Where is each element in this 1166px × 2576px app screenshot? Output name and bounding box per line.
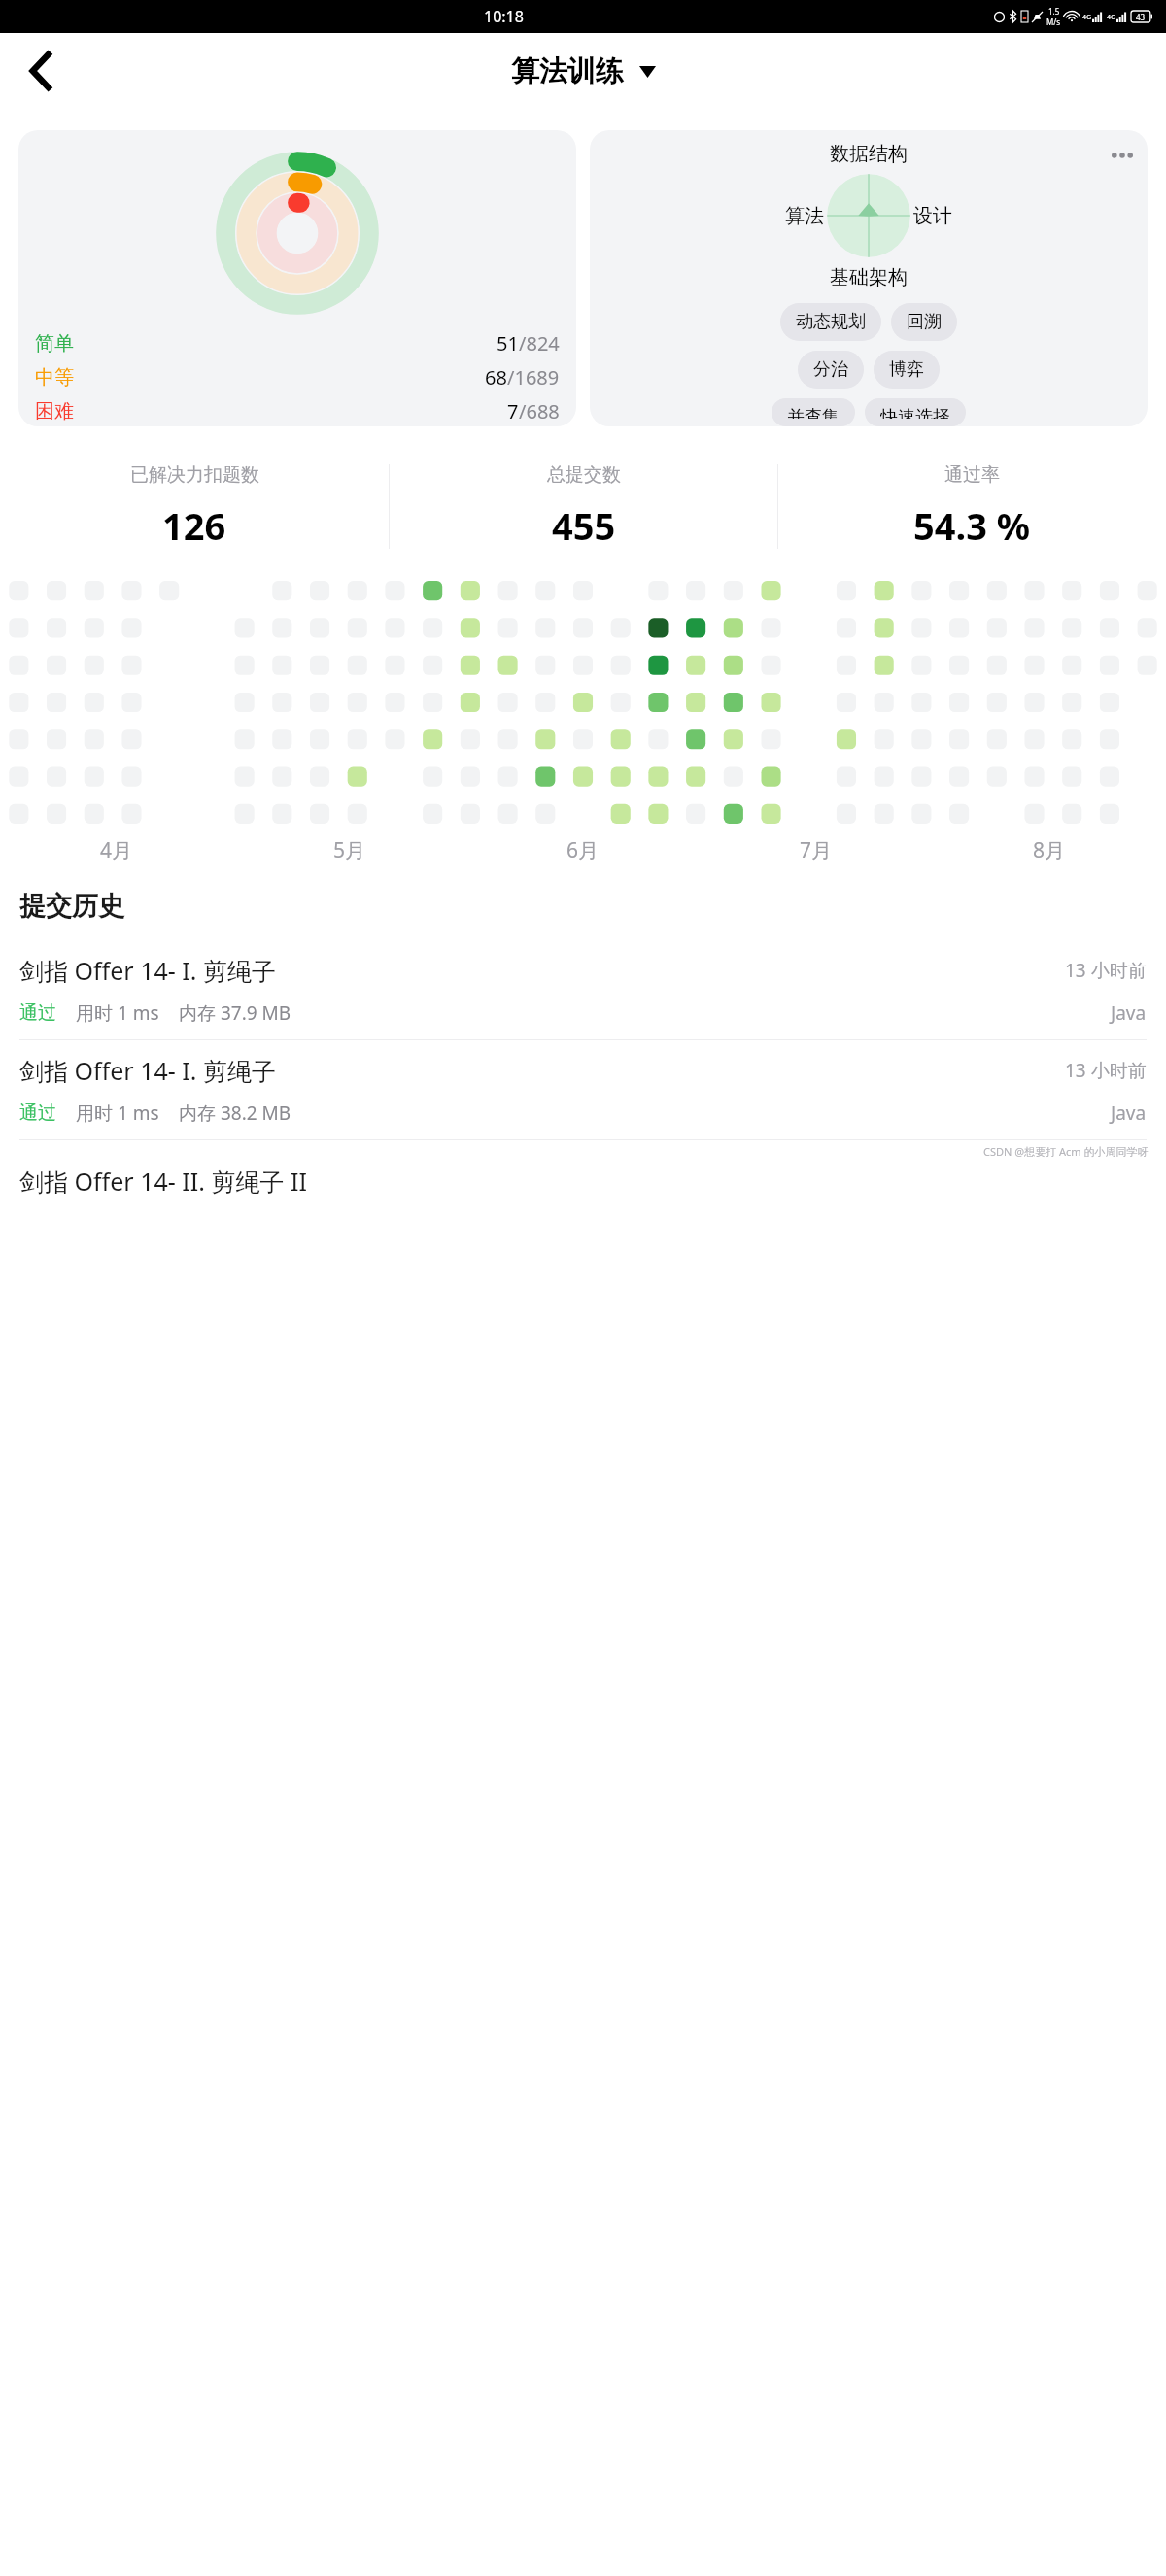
staticText: 提交历史 bbox=[19, 890, 124, 923]
staticText: CSDN @想要打 Acm 的小周同学呀 bbox=[983, 1144, 1149, 1159]
button[interactable]: 剑指 Offer 14- I. 剪绳子 bbox=[0, 940, 1166, 1039]
staticText: 算法 bbox=[785, 204, 824, 228]
staticText: 10:18 bbox=[484, 6, 524, 27]
button[interactable]: 更多 bbox=[1103, 136, 1142, 175]
staticText: 快速选择 bbox=[880, 406, 950, 419]
staticText: Java bbox=[1111, 1101, 1147, 1126]
staticText: 用时 1 ms bbox=[76, 1000, 159, 1026]
button[interactable]: 通过率 bbox=[778, 451, 1166, 562]
staticText: 8月 bbox=[1033, 836, 1066, 864]
staticText: 51 bbox=[497, 330, 519, 356]
staticText: 用时 1 ms bbox=[76, 1101, 159, 1126]
staticText: 博弈 bbox=[889, 358, 924, 381]
staticText: /824 bbox=[519, 330, 560, 356]
button[interactable]: 快速选择 bbox=[865, 398, 966, 426]
staticText: 剑指 Offer 14- II. 剪绳子 II bbox=[19, 1165, 307, 1198]
staticText: 简单 bbox=[35, 331, 74, 356]
button[interactable]: 博弈 bbox=[874, 351, 940, 389]
staticText: 困难 bbox=[35, 399, 74, 424]
staticText: Java bbox=[1111, 1000, 1147, 1026]
button[interactable]: 简单 bbox=[18, 130, 576, 426]
staticText: 设计 bbox=[913, 204, 952, 228]
button[interactable]: 总提交数 bbox=[390, 451, 777, 562]
staticText: 通过 bbox=[19, 1102, 56, 1125]
staticText: 数据结构 bbox=[830, 142, 908, 166]
staticText: 43 bbox=[1136, 12, 1146, 22]
button[interactable]: 剑指 Offer 14- I. 剪绳子 bbox=[0, 1040, 1166, 1139]
staticText: 6月 bbox=[566, 836, 600, 864]
staticText: 分治 bbox=[813, 358, 848, 381]
staticText: 动态规划 bbox=[796, 311, 866, 333]
staticText: 68 bbox=[485, 364, 507, 390]
staticText: 剑指 Offer 14- I. 剪绳子 bbox=[19, 954, 276, 987]
button[interactable]: 返回 bbox=[14, 44, 68, 98]
staticText: 13 小时前 bbox=[1065, 958, 1147, 983]
staticText: 126 bbox=[162, 500, 226, 551]
staticText: 通过 bbox=[19, 1001, 56, 1025]
staticText: 54.3 % bbox=[913, 500, 1031, 551]
staticText: 4月 bbox=[100, 836, 133, 864]
staticText: 已解决力扣题数 bbox=[130, 463, 259, 487]
button[interactable]: 回溯 bbox=[891, 303, 957, 341]
staticText: 7 bbox=[507, 398, 519, 424]
staticText: 455 bbox=[552, 500, 616, 551]
staticText: 通过率 bbox=[944, 463, 1000, 487]
staticText: 内存 38.2 MB bbox=[179, 1101, 291, 1126]
staticText: 总提交数 bbox=[547, 463, 621, 487]
staticText: 中等 bbox=[35, 365, 74, 390]
staticText: 算法训练 bbox=[511, 53, 624, 89]
button[interactable]: 并查集 bbox=[772, 398, 855, 426]
button[interactable]: 分治 bbox=[798, 351, 864, 389]
staticText: 回溯 bbox=[907, 311, 942, 333]
staticText: 基础架构 bbox=[830, 265, 908, 289]
staticText: M/s bbox=[1046, 17, 1061, 27]
staticText: /1689 bbox=[507, 364, 560, 390]
staticText: 4G bbox=[1107, 13, 1116, 22]
staticText: 并查集 bbox=[787, 406, 840, 419]
staticText: 4G bbox=[1082, 13, 1092, 22]
staticText: 1.5 bbox=[1048, 6, 1060, 17]
staticText: 剑指 Offer 14- I. 剪绳子 bbox=[19, 1054, 276, 1087]
button[interactable]: 已解决力扣题数 bbox=[0, 451, 389, 562]
staticText: 13 小时前 bbox=[1065, 1058, 1147, 1083]
staticText: 7月 bbox=[800, 836, 833, 864]
staticText: 内存 37.9 MB bbox=[179, 1000, 291, 1026]
button[interactable]: 动态规划 bbox=[780, 303, 881, 341]
button[interactable]: 算法训练 bbox=[511, 53, 656, 89]
button[interactable]: 更多 bbox=[590, 130, 1148, 426]
staticText: 5月 bbox=[333, 836, 366, 864]
staticText: /688 bbox=[519, 398, 560, 424]
